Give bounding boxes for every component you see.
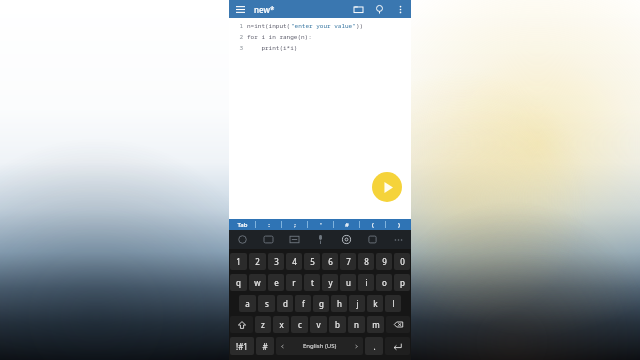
button[interactable]: 4 bbox=[286, 253, 302, 270]
staticText: 1 bbox=[239, 22, 243, 30]
button[interactable]: r bbox=[286, 274, 302, 291]
staticText: t bbox=[311, 277, 314, 288]
button[interactable]: t bbox=[304, 274, 320, 291]
button[interactable]: # bbox=[256, 337, 274, 355]
button[interactable]: 3 bbox=[268, 253, 284, 270]
button[interactable]: z bbox=[255, 316, 271, 333]
button[interactable]: x bbox=[273, 316, 289, 333]
button[interactable]: Space, English (US) bbox=[276, 337, 363, 355]
button[interactable]: w bbox=[249, 274, 266, 291]
staticText: ) bbox=[398, 221, 400, 229]
button[interactable]: 0 bbox=[394, 253, 410, 270]
button[interactable]: g bbox=[313, 295, 329, 312]
staticText: b bbox=[335, 319, 340, 330]
staticText: 2 bbox=[255, 256, 260, 267]
button[interactable]: e bbox=[268, 274, 284, 291]
button[interactable]: Backspace bbox=[386, 316, 410, 333]
staticText: ' bbox=[320, 221, 322, 229]
button[interactable]: Sticker bbox=[255, 230, 281, 249]
button[interactable]: Run bbox=[372, 172, 402, 202]
button[interactable]: 6 bbox=[322, 253, 338, 270]
staticText: f bbox=[302, 298, 305, 309]
staticText: a bbox=[245, 298, 250, 309]
staticText: 3 bbox=[274, 256, 279, 267]
staticText: c bbox=[298, 319, 302, 330]
button[interactable]: More options bbox=[392, 1, 408, 17]
button[interactable]: # bbox=[334, 219, 359, 230]
staticText: n=int(input( bbox=[247, 22, 291, 30]
button[interactable]: v bbox=[310, 316, 327, 333]
button[interactable]: Menu bbox=[232, 1, 248, 17]
button[interactable]: j bbox=[349, 295, 365, 312]
button[interactable]: Emoji bbox=[229, 230, 255, 249]
button[interactable]: f bbox=[295, 295, 311, 312]
staticText: o bbox=[382, 277, 387, 288]
staticText: 2 bbox=[239, 33, 243, 41]
button[interactable]: 8 bbox=[358, 253, 374, 270]
button[interactable]: ; bbox=[282, 219, 307, 230]
button[interactable]: !#1 bbox=[230, 337, 254, 355]
staticText: v bbox=[316, 319, 321, 330]
button[interactable]: : bbox=[256, 219, 281, 230]
button[interactable]: Shift bbox=[230, 316, 253, 333]
button[interactable]: c bbox=[291, 316, 308, 333]
staticText: r bbox=[292, 277, 296, 288]
staticText: # bbox=[262, 341, 268, 352]
staticText: q bbox=[236, 277, 241, 288]
staticText: "enter your value" bbox=[291, 22, 356, 30]
button[interactable]: 5 bbox=[304, 253, 320, 270]
button[interactable]: y bbox=[322, 274, 338, 291]
button[interactable]: Hint bbox=[371, 1, 387, 17]
button[interactable]: i bbox=[358, 274, 374, 291]
staticText: 6 bbox=[328, 256, 333, 267]
button[interactable]: ' bbox=[308, 219, 333, 230]
button[interactable]: b bbox=[329, 316, 346, 333]
staticText: i bbox=[365, 277, 368, 288]
button[interactable]: 2 bbox=[249, 253, 266, 270]
staticText: 9 bbox=[382, 256, 387, 267]
button[interactable]: Clipboard bbox=[281, 230, 307, 249]
button[interactable]: m bbox=[367, 316, 384, 333]
staticText: 1 bbox=[236, 256, 241, 267]
button[interactable]: d bbox=[277, 295, 293, 312]
button[interactable]: q bbox=[230, 274, 247, 291]
button[interactable]: ) bbox=[386, 219, 411, 230]
button[interactable]: k bbox=[367, 295, 383, 312]
staticText: )) bbox=[356, 22, 364, 30]
button[interactable]: Voice input bbox=[307, 230, 333, 249]
button[interactable]: 7 bbox=[340, 253, 356, 270]
button[interactable]: h bbox=[331, 295, 347, 312]
staticText: l bbox=[392, 298, 395, 309]
button[interactable]: p bbox=[394, 274, 410, 291]
staticText: z bbox=[261, 319, 265, 330]
staticText: for i in range(n): bbox=[247, 33, 312, 41]
button[interactable]: . bbox=[365, 337, 383, 355]
button[interactable]: 1 bbox=[230, 253, 247, 270]
staticText: 3 bbox=[239, 44, 243, 52]
button[interactable]: Settings bbox=[333, 230, 359, 249]
button[interactable]: u bbox=[340, 274, 356, 291]
button[interactable]: l bbox=[385, 295, 401, 312]
button[interactable]: ( bbox=[360, 219, 385, 230]
button[interactable]: Tab bbox=[229, 219, 255, 230]
staticText: p bbox=[400, 277, 405, 288]
button[interactable]: Enter bbox=[385, 337, 410, 355]
staticText: e bbox=[274, 277, 279, 288]
button[interactable]: s bbox=[258, 295, 275, 312]
staticText: h bbox=[337, 298, 342, 309]
staticText: # bbox=[345, 221, 349, 229]
staticText: 0 bbox=[400, 256, 405, 267]
button[interactable]: 9 bbox=[376, 253, 392, 270]
button[interactable]: o bbox=[376, 274, 392, 291]
staticText: ( bbox=[372, 221, 374, 229]
button[interactable]: More bbox=[385, 230, 411, 249]
staticText: : bbox=[268, 221, 270, 229]
staticText: s bbox=[265, 298, 269, 309]
button[interactable]: n bbox=[348, 316, 365, 333]
button[interactable]: Handwriting bbox=[359, 230, 385, 249]
button[interactable]: a bbox=[239, 295, 256, 312]
staticText: d bbox=[283, 298, 288, 309]
staticText: x bbox=[279, 319, 284, 330]
button[interactable]: Open folder bbox=[350, 1, 366, 17]
staticText: 8 bbox=[364, 256, 369, 267]
